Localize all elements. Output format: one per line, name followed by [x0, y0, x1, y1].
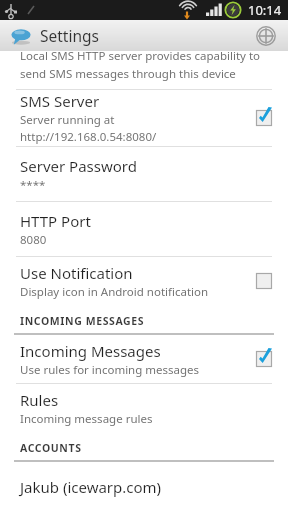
staticText: 8080: [20, 232, 47, 248]
staticText: Local SMS HTTP server provides capabilit…: [20, 48, 261, 64]
staticText: ****: [20, 177, 46, 193]
staticText: Server Password: [20, 156, 137, 176]
staticText: Incoming message rules: [20, 411, 153, 427]
button[interactable]: Checked: [240, 90, 288, 146]
button[interactable]: Jakub (icewarp.com): [0, 462, 288, 512]
staticText: Use rules for incoming messages: [20, 362, 200, 378]
button[interactable]: Incoming Messages: [0, 335, 288, 383]
staticText: Rules: [20, 390, 59, 410]
button[interactable]: Unchecked: [240, 257, 288, 305]
staticText: HTTP Port: [20, 211, 91, 231]
button[interactable]: HTTP Port: [0, 202, 288, 256]
staticText: INCOMING MESSAGES: [20, 314, 145, 328]
button[interactable]: App icon: [8, 23, 34, 49]
button[interactable]: SMS Server: [0, 90, 288, 146]
button[interactable]: Rules: [0, 384, 288, 432]
staticText: Display icon in Android notification: [20, 284, 209, 300]
staticText: Jakub (icewarp.com): [20, 477, 162, 497]
button[interactable]: Add: [252, 22, 280, 50]
staticText: SMS Server: [20, 91, 100, 111]
staticText: ACCOUNTS: [20, 441, 82, 455]
button[interactable]: Use Notification: [0, 257, 288, 305]
button[interactable]: Checked: [240, 335, 288, 383]
staticText: Server running at: [20, 112, 115, 128]
button[interactable]: Server Password: [0, 147, 288, 201]
staticText: Incoming Messages: [20, 341, 161, 361]
staticText: Use Notification: [20, 263, 133, 283]
staticText: send SMS messages through this device: [20, 66, 236, 82]
staticText: 10:14: [248, 1, 282, 19]
staticText: Settings: [40, 25, 99, 46]
staticText: http://192.168.0.54:8080/: [20, 129, 157, 145]
